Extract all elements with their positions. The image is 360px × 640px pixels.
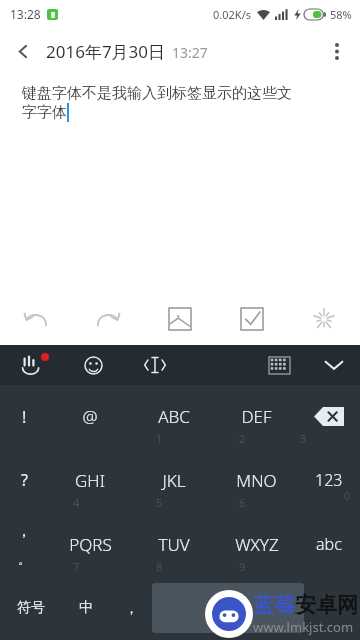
button[interactable]: Backspace: [298, 385, 360, 448]
staticText: 蓝莓: [253, 592, 295, 618]
staticText: 4: [73, 495, 80, 510]
button[interactable]: GHI: [48, 448, 132, 512]
staticText: 符号: [17, 599, 45, 617]
button[interactable]: DEF: [215, 385, 298, 448]
button[interactable]: ?: [0, 448, 48, 512]
staticText: PQRS: [69, 533, 112, 556]
button[interactable]: 中: [62, 576, 110, 640]
button[interactable]: Switch keyboard: [250, 345, 308, 385]
staticText: 5: [156, 495, 163, 510]
button[interactable]: @: [48, 385, 132, 448]
staticText: WXYZ: [235, 533, 279, 556]
button[interactable]: More options: [314, 28, 360, 74]
button[interactable]: TUV: [132, 512, 215, 576]
staticText: 123: [315, 469, 343, 491]
staticText: 。: [18, 551, 31, 567]
button[interactable]: ，: [110, 576, 152, 640]
button[interactable]: ABC: [132, 385, 215, 448]
button[interactable]: 123: [298, 448, 360, 512]
staticText: GHI: [75, 469, 105, 492]
other: Backspace: [314, 407, 344, 426]
button[interactable]: Redo: [72, 293, 144, 345]
button[interactable]: 符号: [0, 576, 62, 640]
staticText: 中: [79, 599, 93, 617]
staticText: 键盘字体不是我输入到标签显示的这些文: [22, 84, 292, 103]
staticText: 3: [300, 431, 307, 446]
staticText: 1: [156, 431, 163, 446]
staticText: 0.02K/s: [213, 7, 251, 22]
button[interactable]: Voice input: [0, 345, 62, 385]
staticText: ABC: [158, 405, 190, 428]
staticText: 安卓网: [295, 592, 358, 618]
staticText: abc: [316, 533, 342, 555]
button[interactable]: Checklist: [216, 293, 288, 345]
staticText: TUV: [158, 533, 190, 556]
staticText: 9: [239, 559, 246, 574]
staticText: 2016年7月30日: [46, 40, 166, 63]
button[interactable]: Space: [152, 583, 304, 633]
staticText: @: [82, 405, 98, 428]
button[interactable]: Effects: [288, 293, 360, 345]
staticText: ，: [125, 600, 138, 616]
staticText: ，: [16, 521, 32, 541]
button[interactable]: Back: [0, 28, 46, 74]
staticText: 2: [239, 431, 246, 446]
staticText: 8: [156, 559, 163, 574]
staticText: JKL: [162, 469, 186, 492]
button[interactable]: Enter: [304, 576, 360, 640]
button[interactable]: JKL: [132, 448, 215, 512]
staticText: www.lmkjst.com: [253, 618, 354, 636]
staticText: 58%: [330, 7, 352, 22]
staticText: DEF: [241, 405, 272, 428]
staticText: 0: [344, 488, 351, 503]
button[interactable]: Insert image: [144, 293, 216, 345]
button[interactable]: Move cursor: [124, 345, 186, 385]
staticText: MNO: [236, 469, 277, 492]
button[interactable]: abc: [298, 512, 360, 576]
button[interactable]: !: [0, 385, 48, 448]
button[interactable]: Emoji: [62, 345, 124, 385]
button[interactable]: PQRS: [48, 512, 132, 576]
button[interactable]: Undo: [0, 293, 72, 345]
button[interactable]: Hide keyboard: [308, 345, 360, 385]
button[interactable]: MNO: [215, 448, 298, 512]
staticText: !: [22, 406, 27, 428]
button[interactable]: ，: [0, 512, 48, 576]
staticText: 6: [239, 495, 246, 510]
staticText: 13:28: [10, 6, 41, 22]
staticText: ?: [21, 469, 28, 491]
button[interactable]: WXYZ: [215, 512, 298, 576]
staticText: 7: [73, 559, 80, 574]
staticText: 13:27: [172, 43, 208, 62]
staticText: 字字体: [22, 103, 67, 122]
